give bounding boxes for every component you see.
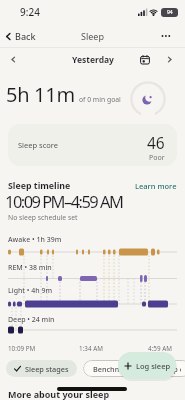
button[interactable] (130, 81, 166, 117)
button[interactable]: Sleep stages (6, 360, 77, 377)
staticText: Back (15, 30, 36, 42)
staticText: of 0 min goal (79, 95, 121, 104)
staticText: 9:24 (20, 5, 40, 19)
button[interactable]: Learn more (135, 181, 177, 191)
staticText: 10:09 PM (8, 344, 36, 353)
staticText: Benchmark (93, 364, 133, 374)
staticText: Sleep score (18, 140, 58, 150)
staticText: More about your sleep (8, 388, 110, 400)
staticText: Log sleep (136, 361, 171, 371)
button[interactable] (140, 55, 150, 65)
staticText: No sleep schedule set (8, 213, 78, 222)
button[interactable]: Yesterday (72, 54, 114, 66)
button[interactable]: Sleep curve (149, 360, 185, 377)
staticText: 1:34 AM (79, 344, 103, 353)
staticText: 46 (147, 132, 165, 153)
staticText: REM • 38 min (8, 263, 52, 273)
button[interactable] (10, 56, 17, 63)
staticText: 4:59 AM (148, 344, 172, 353)
staticText: 5h 11m (6, 81, 75, 108)
staticText: Sleep (81, 30, 104, 42)
button[interactable] (166, 56, 173, 63)
staticText: Poor (149, 153, 165, 163)
staticText: Sleep timeline (8, 180, 71, 192)
staticText: Sleep curve (159, 364, 181, 374)
staticText: Light • 4h 9m (8, 286, 53, 296)
staticText: 10:09 PM–4:59 AM (5, 190, 123, 212)
button[interactable]: Benchmark (83, 360, 143, 377)
button[interactable] (161, 34, 171, 38)
button[interactable]: Log sleep (118, 352, 176, 379)
button[interactable]: Sleep score (8, 124, 177, 166)
staticText: Sleep stages (25, 364, 69, 374)
staticText: Deep • 24 min (8, 315, 55, 325)
staticText: Awake • 1h 39m (8, 235, 62, 245)
staticText: 94 (167, 9, 173, 16)
button[interactable]: Back (5, 30, 36, 42)
